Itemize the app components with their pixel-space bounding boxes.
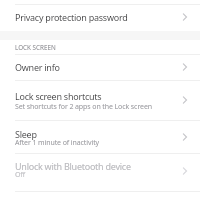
staticText: After 1 minute of inactivity — [15, 138, 100, 148]
button[interactable]: Lock screen shortcuts — [0, 80, 200, 120]
button[interactable]: Owner info — [0, 54, 200, 80]
staticText: Privacy protection password — [15, 11, 128, 23]
staticText: Owner info — [15, 61, 60, 73]
button[interactable]: Privacy protection password — [0, 3, 200, 30]
button[interactable]: Unlock with Bluetooth device — [0, 153, 200, 191]
staticText: Off — [15, 170, 26, 180]
button[interactable]: Sleep — [0, 120, 200, 153]
staticText: Sleep — [15, 128, 37, 140]
staticText: Unlock with Bluetooth device — [15, 160, 131, 172]
staticText: Set shortcuts for 2 apps on the Lock scr… — [15, 102, 152, 112]
staticText: LOCK SCREEN — [15, 43, 56, 52]
staticText: Lock screen shortcuts — [15, 90, 102, 102]
